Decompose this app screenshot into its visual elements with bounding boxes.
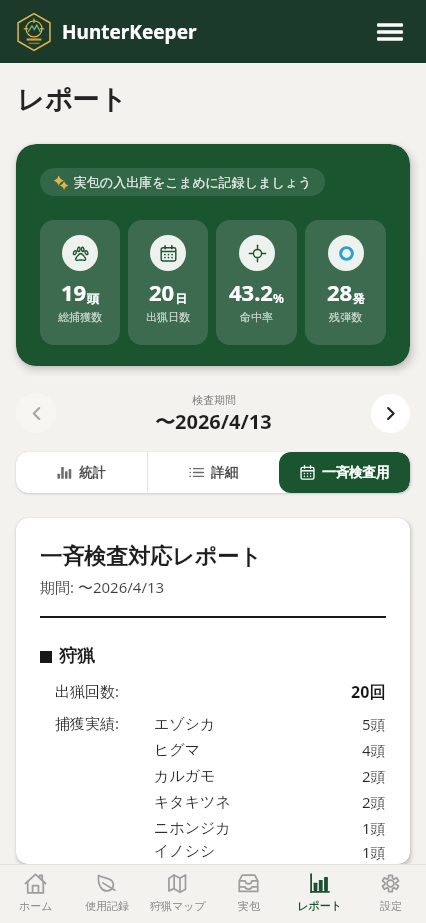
staticText: 出猟回数: [55,681,120,701]
staticText: ホーム [19,899,53,913]
staticText: レポート [17,83,127,117]
button[interactable]: 設定 [355,865,426,920]
button[interactable]: ホーム [0,865,71,920]
staticText: 〜2026/4/13 [155,408,272,433]
staticText: HunterKeeper [62,19,197,45]
button[interactable]: Previous period [16,393,56,433]
button[interactable]: 使用記録 [71,865,142,920]
staticText: 期間: 〜2026/4/13 [40,577,165,597]
staticText: 狩猟 [59,645,95,668]
staticText: 詳細 [211,464,238,481]
staticText: 一斉検査対応レポート [40,543,262,571]
staticText: 実包の入出庫をこまめに記録しましょう [74,174,312,190]
staticText: 命中率 [240,310,273,324]
staticText: 2頭 [362,792,386,812]
staticText: ニホンジカ [154,819,231,838]
staticText: キタキツネ [154,793,231,812]
staticText: 4頭 [362,740,386,760]
staticText: イノシシ [154,842,216,861]
staticText: 統計 [79,464,106,481]
staticText: 日 [175,291,187,306]
staticText: 出猟日数 [146,310,190,324]
button[interactable]: Next period [371,394,410,433]
staticText: 捕獲実績: [55,713,120,733]
staticText: 20 [149,277,175,307]
button[interactable]: 統計 [16,452,147,493]
staticText: 残弾数 [329,310,362,324]
staticText: % [273,290,284,306]
staticText: 28 [327,277,353,307]
button[interactable]: 一斉検査用 [279,452,410,493]
staticText: 頭 [87,291,99,306]
staticText: 5頭 [362,714,386,734]
staticText: 使用記録 [85,899,129,913]
staticText: 総捕獲数 [58,310,102,324]
staticText: ヒグマ [154,741,201,760]
staticText: 実包 [238,899,260,913]
staticText: エゾシカ [154,715,216,734]
button[interactable]: Menu [367,9,413,55]
staticText: 発 [353,291,365,306]
button[interactable]: 実包 [213,865,284,920]
staticText: 狩猟マップ [150,899,206,913]
button[interactable]: レポート [284,865,355,920]
staticText: 1頭 [362,818,386,838]
staticText: 設定 [380,899,402,913]
staticText: 20回 [351,681,386,703]
staticText: 1頭 [362,842,386,862]
staticText: 43.2 [229,277,273,307]
staticText: 一斉検査用 [322,464,390,481]
staticText: 19 [61,277,87,307]
staticText: カルガモ [154,767,216,786]
button[interactable]: 詳細 [148,452,279,493]
button[interactable]: 狩猟マップ [142,865,213,920]
staticText: 2頭 [362,766,386,786]
staticText: レポート [297,899,342,913]
staticText: 検査期間 [192,393,236,407]
